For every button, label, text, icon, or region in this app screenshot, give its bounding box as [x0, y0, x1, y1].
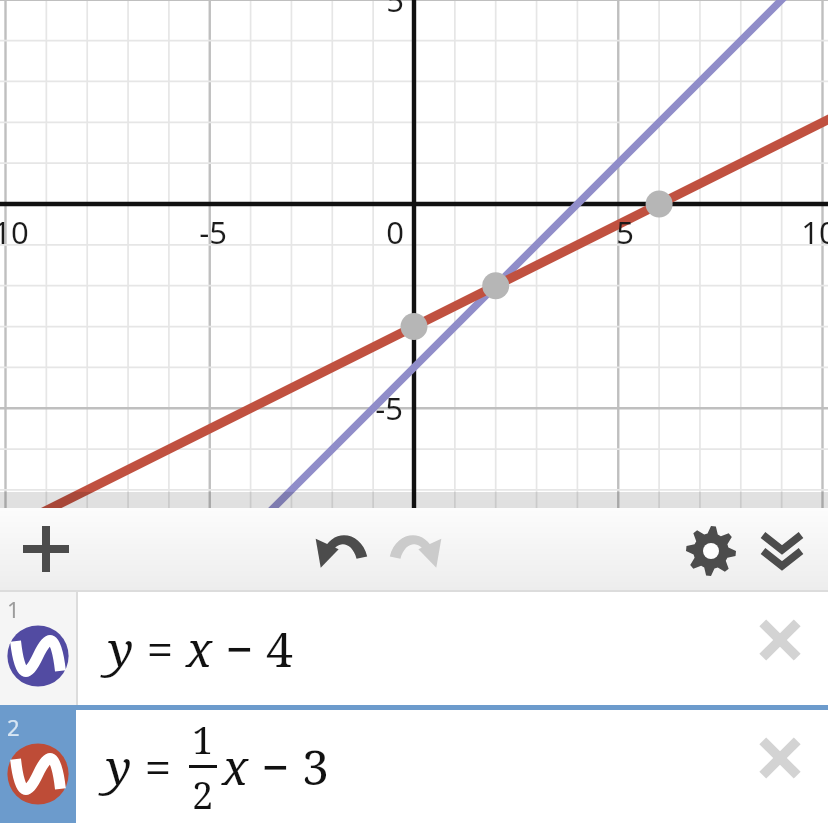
button[interactable]: Collapse: [747, 516, 817, 586]
button[interactable]: Add expression: [12, 515, 80, 583]
staticText: −: [213, 616, 266, 681]
staticText: 1: [7, 594, 20, 624]
button[interactable]: Delete expression: [732, 592, 828, 705]
staticText: y: [106, 734, 132, 799]
staticText: y: [108, 616, 134, 681]
staticText: 10: [769, 211, 828, 253]
button[interactable]: Redo: [381, 517, 449, 585]
staticText: 3: [302, 734, 329, 799]
staticText: x: [222, 734, 249, 799]
staticText: 1: [192, 713, 214, 765]
staticText: -5: [339, 387, 439, 429]
button[interactable]: Settings: [676, 516, 746, 586]
button[interactable]: Delete expression: [732, 710, 828, 823]
staticText: 0: [345, 211, 445, 253]
staticText: 2: [7, 712, 20, 742]
staticText: −: [249, 734, 302, 799]
staticText: =: [132, 734, 184, 799]
staticText: -5: [163, 211, 263, 253]
staticText: 2: [192, 768, 214, 820]
button[interactable]: Undo: [308, 517, 376, 585]
staticText: 4: [266, 616, 293, 681]
button[interactable]: 2: [0, 710, 828, 823]
staticText: -10: [0, 211, 56, 253]
staticText: x: [186, 616, 213, 681]
staticText: 5: [575, 211, 675, 253]
button[interactable]: 1: [0, 592, 828, 705]
staticText: 5: [345, 0, 445, 21]
staticText: =: [134, 616, 186, 681]
